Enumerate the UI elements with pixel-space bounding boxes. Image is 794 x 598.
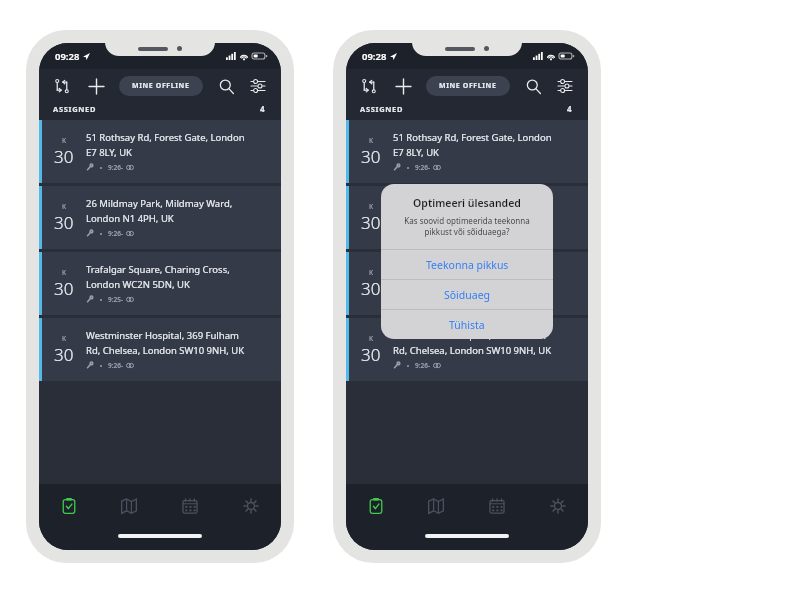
button[interactable]: K: [346, 318, 588, 381]
button[interactable]: Tühista: [381, 310, 553, 339]
staticText: 30: [54, 211, 74, 234]
staticText: K: [62, 334, 67, 343]
staticText: 4: [260, 103, 265, 114]
staticText: 9:26-: [108, 361, 124, 370]
staticText: E7 8LY, UK: [86, 146, 132, 159]
button[interactable]: Add task: [392, 75, 414, 97]
button[interactable]: Map: [99, 484, 159, 528]
staticText: K: [369, 334, 374, 343]
staticText: K: [62, 136, 67, 145]
button[interactable]: K: [346, 186, 588, 249]
staticText: E7 8LY, UK: [393, 146, 439, 159]
staticText: 30: [361, 145, 381, 168]
staticText: 30: [361, 343, 381, 366]
staticText: K: [369, 202, 374, 211]
staticText: Rd, Chelsea, London SW10 9NH, UK: [393, 344, 552, 357]
staticText: 9:26-: [108, 163, 124, 172]
staticText: Tühista: [449, 318, 485, 332]
button[interactable]: K: [346, 120, 588, 183]
staticText: 30: [361, 211, 381, 234]
staticText: 9:25-: [108, 295, 124, 304]
button[interactable]: Filter: [554, 75, 576, 97]
staticText: Westminster Hospital, 369 Fulham: [86, 329, 239, 342]
staticText: London N1 4PH, UK: [393, 212, 481, 225]
button[interactable]: Teekonna pikkus: [381, 250, 553, 279]
button[interactable]: Calendar: [466, 484, 527, 528]
staticText: Rd, Chelsea, London SW10 9NH, UK: [86, 344, 245, 357]
staticText: 30: [361, 277, 381, 300]
staticText: K: [369, 268, 374, 277]
staticText: 30: [54, 277, 74, 300]
button[interactable]: Settings: [527, 484, 588, 528]
button[interactable]: Settings: [220, 484, 281, 528]
staticText: ASSIGNED: [53, 104, 97, 114]
staticText: London WC2N 5DN, UK: [86, 278, 190, 291]
staticText: 30: [54, 343, 74, 366]
button[interactable]: Tasks: [39, 484, 99, 528]
staticText: 09:28: [55, 50, 80, 63]
staticText: ASSIGNED: [360, 104, 404, 114]
button[interactable]: Reorder tasks: [358, 75, 380, 97]
staticText: 30: [54, 145, 74, 168]
staticText: 51 Rothsay Rd, Forest Gate, London: [86, 131, 245, 144]
button[interactable]: K: [39, 318, 281, 381]
staticText: Optimeeri ülesanded: [413, 196, 521, 210]
staticText: K: [369, 136, 374, 145]
staticText: 26 Mildmay Park, Mildmay Ward,: [393, 197, 540, 210]
staticText: Westminster Hospital, 369 Fulham: [393, 329, 546, 342]
button[interactable]: Map: [406, 484, 466, 528]
staticText: Sõiduaeg: [444, 288, 491, 302]
staticText: London N1 4PH, UK: [86, 212, 174, 225]
button[interactable]: Search: [522, 75, 544, 97]
button[interactable]: Filter: [247, 75, 269, 97]
staticText: 9:26-: [415, 229, 431, 238]
staticText: MINE OFFLINE: [132, 81, 190, 91]
button[interactable]: Add task: [85, 75, 107, 97]
button[interactable]: K: [39, 252, 281, 315]
staticText: 09:28: [362, 50, 387, 63]
button[interactable]: Reorder tasks: [51, 75, 73, 97]
staticText: London WC2N 5DN, UK: [393, 278, 497, 291]
staticText: 51 Rothsay Rd, Forest Gate, London: [393, 131, 552, 144]
button[interactable]: MINE OFFLINE: [426, 76, 510, 96]
staticText: Trafalgar Square, Charing Cross,: [86, 263, 230, 276]
button[interactable]: K: [39, 120, 281, 183]
staticText: 4: [567, 103, 572, 114]
button[interactable]: MINE OFFLINE: [119, 76, 203, 96]
staticText: 26 Mildmay Park, Mildmay Ward,: [86, 197, 233, 210]
button[interactable]: Sõiduaeg: [381, 280, 553, 309]
button[interactable]: K: [39, 186, 281, 249]
button[interactable]: Calendar: [159, 484, 220, 528]
button[interactable]: Search: [215, 75, 237, 97]
staticText: Trafalgar Square, Charing Cross,: [393, 263, 537, 276]
staticText: 9:26-: [415, 361, 431, 370]
staticText: K: [62, 268, 67, 277]
staticText: Kas soovid optimeerida teekonna pikkust …: [404, 215, 530, 237]
staticText: Teekonna pikkus: [426, 258, 509, 272]
button[interactable]: K: [346, 252, 588, 315]
button[interactable]: Tasks: [346, 484, 406, 528]
staticText: 9:26-: [415, 163, 431, 172]
staticText: 9:26-: [108, 229, 124, 238]
staticText: K: [62, 202, 67, 211]
staticText: MINE OFFLINE: [439, 81, 497, 91]
